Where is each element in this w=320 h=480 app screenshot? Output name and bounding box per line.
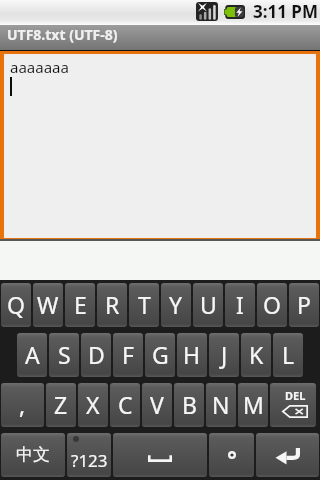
button[interactable]: , xyxy=(1,383,44,427)
staticText: I xyxy=(236,289,244,320)
staticText: Z xyxy=(54,389,68,420)
button[interactable]: Delete xyxy=(270,383,316,427)
button[interactable]: G xyxy=(145,333,175,377)
button[interactable]: B xyxy=(174,383,204,427)
button[interactable]: Enter xyxy=(256,433,319,477)
staticText: J xyxy=(221,339,228,370)
staticText: DEL xyxy=(285,388,306,403)
button[interactable]: E xyxy=(65,283,95,327)
button[interactable]: J xyxy=(209,333,239,377)
staticText: 3:11 PM xyxy=(253,0,318,23)
button[interactable]: ?123 xyxy=(67,433,111,477)
staticText: U xyxy=(200,289,217,320)
button[interactable]: Q xyxy=(1,283,31,327)
staticText: L xyxy=(282,339,295,370)
staticText: ?123 xyxy=(71,449,108,472)
staticText: C xyxy=(118,389,133,420)
staticText: P xyxy=(297,289,311,320)
button[interactable]: L xyxy=(273,333,303,377)
button[interactable]: F xyxy=(113,333,143,377)
button[interactable]: 中文 xyxy=(1,433,65,477)
staticText: H xyxy=(183,339,201,370)
staticText: W xyxy=(37,289,59,320)
staticText: R xyxy=(105,289,120,320)
button[interactable]: R xyxy=(97,283,127,327)
staticText: E xyxy=(74,289,87,320)
staticText: M xyxy=(243,389,264,420)
staticText: T xyxy=(138,289,151,320)
button[interactable]: Full stop xyxy=(209,433,254,477)
staticText: K xyxy=(249,339,264,370)
staticText: Y xyxy=(169,289,183,320)
button[interactable]: C xyxy=(110,383,140,427)
staticText: Q xyxy=(7,289,25,320)
staticText: 中文 xyxy=(16,444,50,465)
staticText: A xyxy=(25,339,40,370)
staticText: F xyxy=(122,339,134,370)
staticText: D xyxy=(88,339,105,370)
button[interactable]: K xyxy=(241,333,271,377)
button[interactable]: W xyxy=(33,283,63,327)
staticText: S xyxy=(58,339,71,370)
button[interactable]: U xyxy=(193,283,223,327)
button[interactable]: D xyxy=(81,333,111,377)
button[interactable]: P xyxy=(289,283,319,327)
button[interactable]: Space xyxy=(113,433,207,477)
button[interactable]: T xyxy=(129,283,159,327)
button[interactable]: X xyxy=(78,383,108,427)
staticText: G xyxy=(152,339,169,370)
button[interactable]: I xyxy=(225,283,255,327)
staticText: aaaaaaa xyxy=(10,57,69,77)
staticText: O xyxy=(263,289,281,320)
staticText: , xyxy=(19,389,26,420)
staticText: UTF8.txt (UTF-8) xyxy=(7,25,118,44)
button[interactable]: V xyxy=(142,383,172,427)
button[interactable]: A xyxy=(17,333,47,377)
button[interactable]: Y xyxy=(161,283,191,327)
button[interactable]: N xyxy=(206,383,236,427)
button[interactable]: M xyxy=(238,383,268,427)
staticText: V xyxy=(150,389,164,420)
staticText: B xyxy=(182,389,197,420)
staticText: X xyxy=(86,389,100,420)
button[interactable]: O xyxy=(257,283,287,327)
button[interactable]: H xyxy=(177,333,207,377)
staticText: N xyxy=(212,389,230,420)
button[interactable]: Z xyxy=(46,383,76,427)
button[interactable]: S xyxy=(49,333,79,377)
